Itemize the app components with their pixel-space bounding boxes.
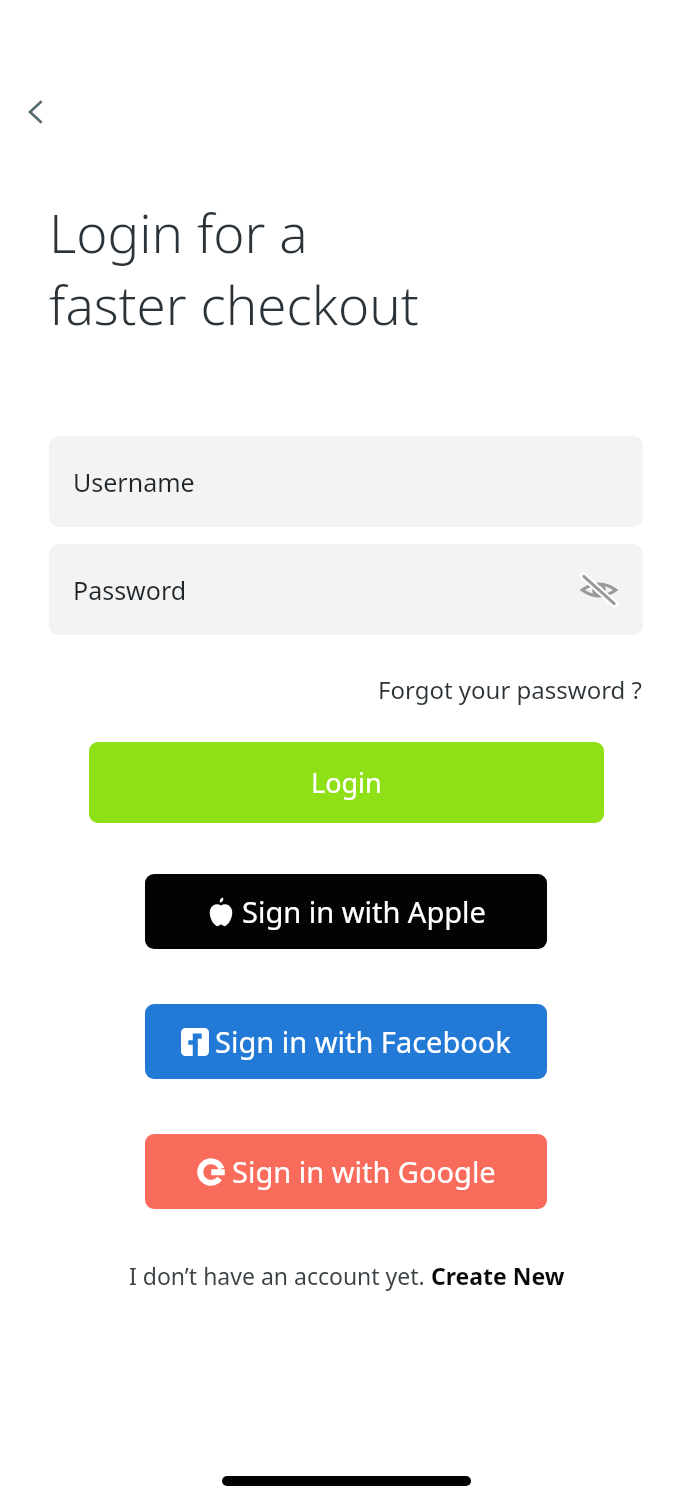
staticText: Sign in with Facebook xyxy=(215,1022,511,1061)
staticText: Create New xyxy=(431,1260,565,1291)
staticText: Username xyxy=(73,465,195,499)
staticText: Password xyxy=(73,573,187,607)
button[interactable]: Sign in with Google xyxy=(145,1134,547,1209)
button[interactable]: I don’t have an account yet. xyxy=(129,1260,565,1291)
staticText: Sign in with Google xyxy=(232,1152,496,1191)
button[interactable]: Sign in with Apple xyxy=(145,874,547,949)
button[interactable]: Show password xyxy=(575,566,623,614)
button[interactable]: Login xyxy=(89,742,604,823)
button[interactable]: Sign in with Facebook xyxy=(145,1004,547,1079)
staticText: Forgot your password ? xyxy=(378,673,643,706)
button[interactable]: Forgot your password ? xyxy=(353,663,643,715)
staticText: faster checkout xyxy=(49,268,419,340)
staticText: Login for a xyxy=(49,196,308,268)
staticText: Login xyxy=(311,764,382,801)
staticText: I don’t have an account yet. xyxy=(129,1260,431,1291)
button[interactable]: Username xyxy=(49,436,643,527)
button[interactable]: Back xyxy=(12,88,60,136)
button[interactable]: Password xyxy=(49,544,643,635)
staticText: Sign in with Apple xyxy=(242,892,486,931)
